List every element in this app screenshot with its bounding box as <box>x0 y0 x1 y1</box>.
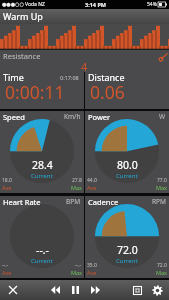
staticText: --.- <box>2 262 9 269</box>
button[interactable]: Warm Up <box>0 9 169 24</box>
button[interactable]: Pause <box>66 281 84 299</box>
other: Adjust resistance <box>159 53 168 61</box>
staticText: Heart Rate <box>3 197 41 207</box>
button[interactable]: Power <box>85 111 169 193</box>
staticText: Max <box>71 184 82 191</box>
staticText: Current <box>116 172 138 180</box>
staticText: 3:14 PM <box>85 1 107 8</box>
staticText: 18.0 <box>2 177 12 184</box>
button[interactable]: Heart Rate <box>0 196 84 278</box>
staticText: 27.8 <box>72 177 82 184</box>
staticText: Current <box>116 257 138 265</box>
staticText: Warm Up <box>3 10 43 22</box>
staticText: Ave <box>87 184 97 191</box>
staticText: --.- <box>75 262 82 269</box>
staticText: 0:17:08 <box>60 74 79 81</box>
staticText: Max <box>71 269 82 276</box>
staticText: Ave <box>2 184 12 191</box>
staticText: 77.0 <box>157 177 167 184</box>
staticText: Km/h <box>64 112 81 121</box>
staticText: 4 <box>81 59 88 72</box>
staticText: Distance <box>88 71 125 83</box>
staticText: 80.0 <box>117 158 138 172</box>
button[interactable]: Settings <box>148 281 166 299</box>
button[interactable]: Cadence <box>85 196 169 278</box>
staticText: 72.0 <box>117 243 138 257</box>
button[interactable]: Speed <box>0 111 84 193</box>
staticText: 72.0 <box>157 262 167 269</box>
button[interactable]: Next <box>86 281 104 299</box>
staticText: Max <box>156 184 167 191</box>
staticText: 35.0 <box>87 262 97 269</box>
staticText: Speed <box>3 112 25 122</box>
staticText: Max <box>156 269 167 276</box>
staticText: 44.0 <box>87 177 97 184</box>
staticText: BPM <box>66 197 81 206</box>
button[interactable]: Previous <box>46 281 64 299</box>
staticText: Resistance <box>3 51 41 61</box>
staticText: --.- <box>36 243 49 257</box>
button[interactable]: Close <box>4 281 22 299</box>
staticText: Ave <box>87 269 97 276</box>
staticText: 54% <box>147 1 157 8</box>
staticText: Time <box>3 71 24 83</box>
staticText: Current <box>31 172 53 180</box>
staticText: W <box>159 112 166 121</box>
staticText: ●●●○○ Voda NZ <box>2 1 45 8</box>
staticText: Ave <box>2 269 12 276</box>
staticText: Current <box>31 257 53 265</box>
staticText: 0.06 <box>90 80 125 104</box>
staticText: Cadence <box>88 197 119 207</box>
staticText: Power <box>88 112 111 122</box>
button[interactable]: Data table <box>128 281 146 299</box>
staticText: 28.4 <box>32 158 53 172</box>
staticText: 0:00:11 <box>5 80 65 104</box>
staticText: RPM <box>152 197 166 206</box>
